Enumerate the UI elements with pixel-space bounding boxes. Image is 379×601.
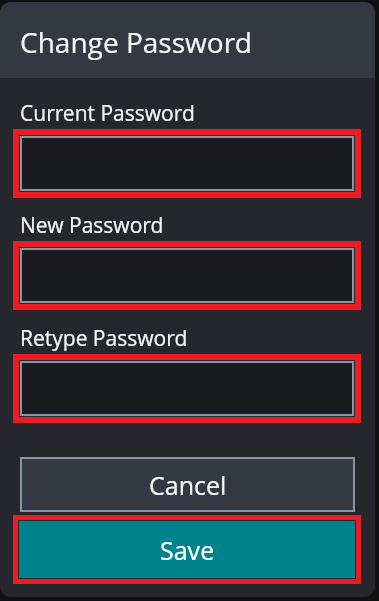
staticText: New Password	[20, 211, 164, 240]
button[interactable]: Cancel	[20, 457, 355, 512]
button[interactable]: Current password input	[20, 136, 354, 191]
staticText: Retype Password	[20, 324, 188, 353]
staticText: Current Password	[20, 99, 195, 128]
button[interactable]: Retype password input	[20, 361, 354, 416]
staticText: Change Password	[20, 23, 252, 61]
button[interactable]: Save	[19, 521, 355, 578]
staticText: Cancel	[149, 468, 227, 502]
button[interactable]: New password input	[20, 248, 354, 303]
staticText: Save	[160, 533, 215, 567]
